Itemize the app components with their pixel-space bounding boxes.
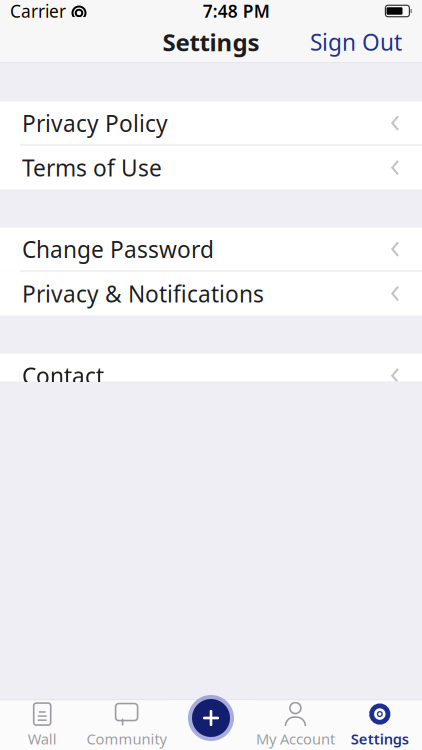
staticText: Contact: [22, 360, 104, 391]
staticText: My Account: [256, 729, 335, 749]
button[interactable]: Community: [84, 700, 169, 750]
button[interactable]: My Account: [253, 700, 338, 750]
staticText: Carrier: [10, 0, 66, 22]
button[interactable]: Add: [185, 692, 237, 744]
button[interactable]: Wall: [0, 700, 84, 750]
staticText: Privacy Policy: [22, 108, 168, 138]
staticText: Privacy & Notifications: [22, 278, 264, 309]
button[interactable]: Privacy & Notifications: [0, 272, 422, 316]
button[interactable]: Terms of Use: [0, 146, 422, 190]
button[interactable]: Privacy Policy: [0, 102, 422, 146]
staticText: Sign Out: [310, 27, 402, 57]
staticText: 7:48 PM: [203, 0, 270, 22]
button[interactable]: Sign Out: [298, 19, 414, 65]
staticText: Community: [87, 729, 167, 749]
button[interactable]: Contact: [0, 354, 422, 398]
staticText: Terms of Use: [22, 152, 162, 183]
button[interactable]: Change Password: [0, 228, 422, 272]
staticText: Settings: [162, 26, 259, 58]
button[interactable]: Settings: [338, 700, 422, 750]
staticText: Settings: [351, 729, 409, 749]
staticText: Change Password: [22, 234, 214, 264]
staticText: Wall: [28, 729, 57, 749]
